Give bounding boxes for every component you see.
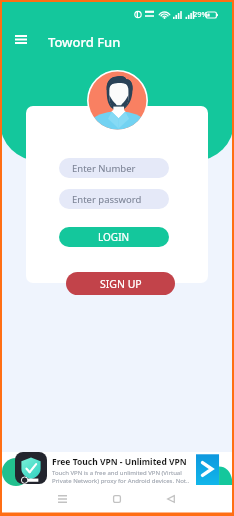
button[interactable]: Install — [196, 453, 232, 485]
button[interactable]: Home — [105, 487, 129, 511]
button[interactable]: Back — [159, 487, 183, 511]
staticText: Toword Fun — [48, 33, 121, 51]
staticText: 29% — [193, 9, 208, 19]
button[interactable]: Free Touch VPN - Unlimited VPN — [0, 452, 234, 487]
button[interactable]: LOGIN — [59, 227, 169, 247]
staticText: SIGN UP — [100, 277, 142, 291]
staticText: Free Touch VPN - Unlimited VPN — [52, 456, 187, 468]
button[interactable]: SIGN UP — [66, 272, 175, 295]
button[interactable]: Enter Number — [59, 158, 169, 178]
button[interactable]: Recent apps — [50, 487, 74, 511]
staticText: LOGIN — [98, 230, 130, 244]
staticText: Enter Number — [72, 162, 136, 175]
button[interactable]: Enter password — [59, 189, 169, 209]
button[interactable]: Menu — [8, 27, 33, 52]
staticText: Enter password — [72, 193, 142, 206]
staticText: Touch VPN is a free and unlimited VPN (V… — [52, 469, 192, 485]
